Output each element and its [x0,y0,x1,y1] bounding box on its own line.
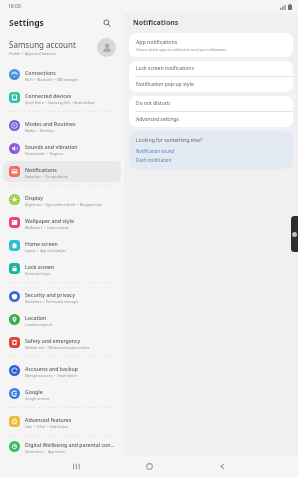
staticText: Accounts and backup [25,365,78,372]
button[interactable]: Lock screen notifications [129,61,293,76]
button[interactable]: Flash notification [136,157,172,163]
button[interactable]: Sounds and vibration [3,138,121,159]
button[interactable]: Accounts and backup [3,360,121,381]
staticText: Choose which apps are allowed to send yo… [136,47,227,52]
staticText: Advanced settings [136,116,179,123]
staticText: App notifications [136,38,178,45]
staticText: Layout • App icon badges [25,248,66,252]
button[interactable]: Samsung account [0,33,124,61]
staticText: Wallpaper and style [25,217,74,224]
staticText: Connected devices [25,92,72,99]
staticText: Security and privacy [25,291,75,298]
staticText: Settings [9,17,44,29]
button[interactable]: Advanced settings [129,112,293,127]
button[interactable]: Home screen [3,235,121,256]
staticText: Wi-Fi • Bluetooth • SIM manager [25,77,79,81]
button[interactable]: Search [99,15,115,31]
button[interactable]: Notification pop-up style [129,77,293,92]
staticText: Sound mode • Ringtone [25,151,64,155]
staticText: Brightness • Eye comfort shield • Naviga… [25,202,103,206]
staticText: Profile • Apps and features [9,51,56,56]
staticText: Screen time • App timers [25,449,65,453]
button[interactable]: Connections [3,64,121,85]
button[interactable]: Security and privacy [3,286,121,307]
staticText: Sounds and vibration [25,143,78,150]
staticText: Flash notification [136,157,172,163]
staticText: Biometrics • Permission manager [25,299,79,303]
staticText: Advanced features [25,416,72,423]
button[interactable]: Modes and Routines [3,115,121,136]
staticText: Manage accounts • Smart Switch [25,373,78,377]
staticText: Labs • S Pen • Side button [25,424,68,428]
staticText: Notification sound [136,148,175,154]
button[interactable]: Do not disturb [129,96,293,111]
button[interactable]: Home [139,456,159,476]
staticText: Do not disturb [136,100,170,107]
staticText: Home screen [25,240,58,247]
button[interactable]: Location [3,309,121,330]
staticText: Wallpapers • Colour palette [25,225,69,229]
button[interactable]: Notifications [3,161,121,182]
staticText: Quick Share • Samsung DeX • Android Auto [25,100,95,104]
staticText: 18:00 [8,3,21,10]
button[interactable]: Safety and emergency [3,332,121,353]
button[interactable]: App notifications [129,33,293,57]
staticText: Screen lock type [25,271,51,275]
staticText: Notifications [25,166,57,173]
button[interactable]: Edge panel [291,216,298,252]
button[interactable]: Connected devices [3,87,121,108]
staticText: Google services [25,396,50,400]
staticText: Notification pop-up style [136,81,194,88]
staticText: Looking for something else? [136,137,203,144]
staticText: Digital Wellbeing and parental controls [25,441,115,448]
staticText: Samsung account [9,39,76,50]
staticText: Location [25,314,47,321]
staticText: Connections [25,69,56,76]
staticText: Modes and Routines [25,120,76,127]
button[interactable]: Back [212,456,232,476]
staticText: Status bar • Do not disturb [25,174,68,178]
button[interactable]: Advanced features [3,411,121,432]
staticText: Lock screen notifications [136,65,194,72]
staticText: Google [25,388,43,395]
button[interactable]: Digital Wellbeing and parental controls [3,439,121,454]
staticText: Location requests [25,322,53,326]
button[interactable]: Display [3,189,121,210]
staticText: Display [25,194,44,201]
staticText: Modes • Routines [25,128,54,132]
button[interactable]: Recents [66,456,86,476]
staticText: Safety and emergency [25,337,81,344]
button[interactable]: Lock screen [3,258,121,279]
staticText: Medical info • Wireless emergency alerts [25,345,90,349]
staticText: Lock screen [25,263,55,270]
button[interactable]: Wallpaper and style [3,212,121,233]
staticText: Notifications [133,18,179,28]
button[interactable]: Google [3,383,121,404]
button[interactable]: Notification sound [136,148,175,154]
